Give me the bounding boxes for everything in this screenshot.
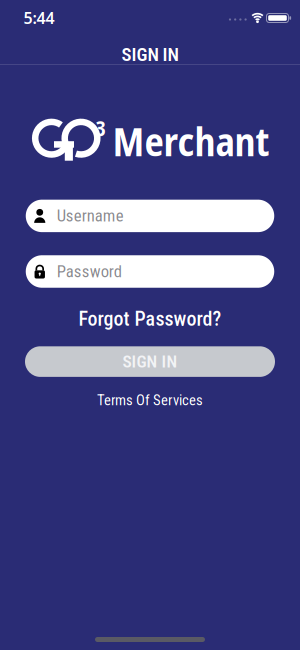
button[interactable]: Terms Of Services [97,392,203,409]
button[interactable]: Username [26,200,274,232]
staticText: SIGN IN [121,44,178,65]
button[interactable]: Forgot Password? [78,307,221,331]
staticText: SIGN IN [122,351,177,372]
staticText: Forgot Password? [78,307,221,331]
staticText: Merchant [112,115,269,168]
staticText: Terms Of Services [97,392,203,409]
staticText: Username [57,206,124,226]
staticText: Password [57,262,122,281]
staticText: 5:44 [23,7,54,28]
staticText: 3 [95,114,105,142]
button[interactable]: SIGN IN [25,346,275,377]
button[interactable]: Password [26,255,274,288]
